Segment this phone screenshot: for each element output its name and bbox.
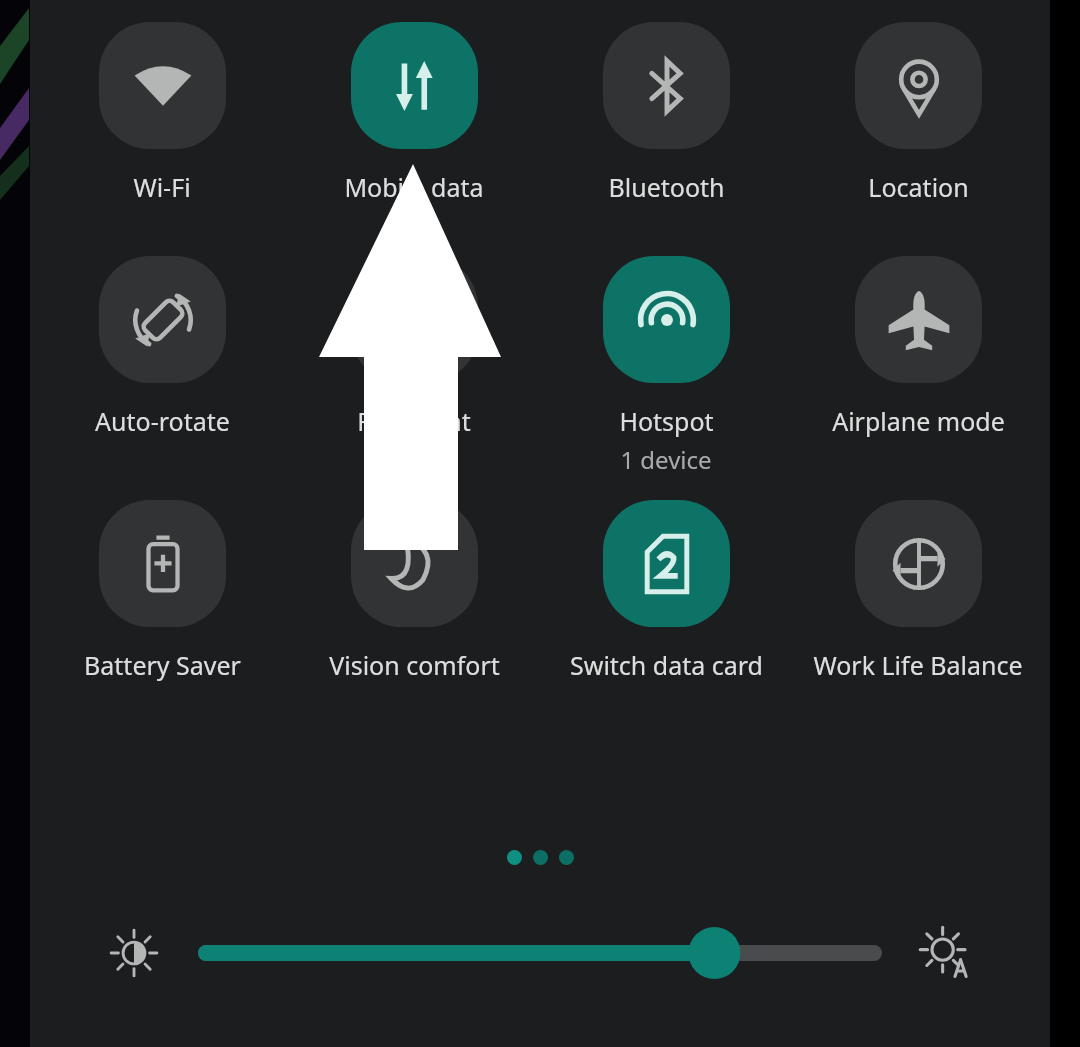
staticText: Hotspot — [619, 404, 714, 438]
staticText: Mobile data — [344, 170, 484, 204]
button[interactable]: Wi-Fi — [42, 22, 282, 204]
staticText: Location — [868, 170, 969, 204]
staticText: Work Life Balance — [813, 648, 1023, 682]
button[interactable]: Flashlight — [294, 256, 534, 438]
staticText: Switch data card — [570, 648, 763, 682]
button[interactable]: Auto brightness — [914, 921, 978, 985]
staticText: 1 device — [620, 443, 712, 476]
button[interactable]: Auto-rotate — [42, 256, 282, 438]
staticText: Vision comfort — [329, 648, 500, 682]
staticText: Auto-rotate — [95, 404, 230, 438]
button[interactable]: Bluetooth — [546, 22, 786, 204]
button[interactable]: Battery Saver — [42, 500, 282, 682]
button[interactable]: Work Life Balance — [798, 500, 1038, 682]
button[interactable]: Vision comfort — [294, 500, 534, 682]
staticText: Wi-Fi — [133, 170, 191, 204]
button[interactable]: Mobile data — [294, 22, 534, 204]
button[interactable]: Airplane mode — [798, 256, 1038, 438]
button[interactable]: Switch data card — [546, 500, 786, 682]
button[interactable]: Hotspot — [546, 256, 786, 476]
staticText: Bluetooth — [608, 170, 725, 204]
staticText: Battery Saver — [84, 648, 241, 682]
button[interactable]: Lower brightness — [102, 921, 166, 985]
button[interactable]: Brightness — [198, 923, 882, 983]
staticText: Flashlight — [357, 404, 471, 438]
button[interactable]: Location — [798, 22, 1038, 204]
staticText: Airplane mode — [832, 404, 1005, 438]
